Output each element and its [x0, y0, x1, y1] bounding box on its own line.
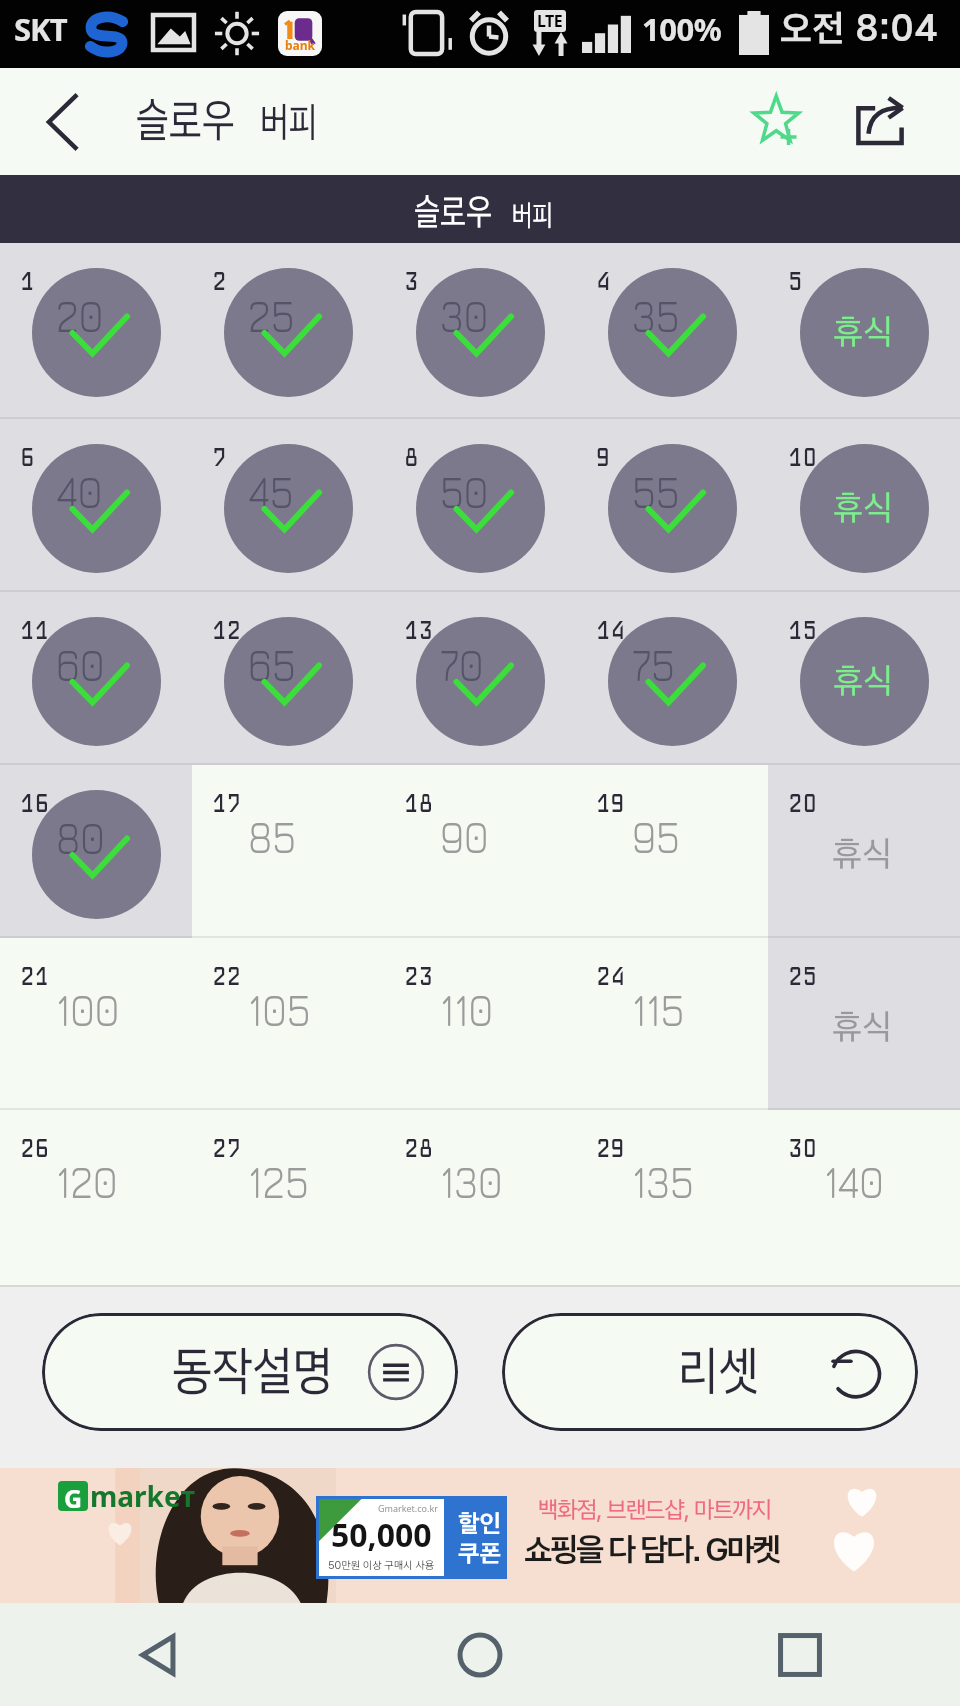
staticText: 75 — [632, 638, 676, 691]
staticText: 버피 — [512, 197, 554, 233]
button[interactable]: 14 — [576, 592, 768, 765]
staticText: 쿠폰 — [458, 1538, 501, 1568]
staticText: 50,000 — [331, 1513, 432, 1557]
staticText: markeт — [90, 1477, 195, 1515]
button[interactable]: 17 — [192, 765, 384, 938]
button[interactable]: 21 — [0, 938, 192, 1110]
button[interactable]: 1 — [0, 243, 192, 419]
button[interactable]: 9 — [576, 419, 768, 592]
staticText: 슬로우 — [136, 91, 235, 148]
staticText: 65 — [248, 638, 296, 691]
button[interactable]: 5 — [768, 243, 960, 419]
staticText: bank — [285, 37, 316, 53]
staticText: Gmarket.co.kr — [378, 1502, 438, 1514]
staticText: 95 — [632, 810, 680, 863]
staticText: 30 — [788, 1130, 818, 1165]
staticText: 27 — [212, 1130, 242, 1165]
staticText: 80 — [56, 811, 105, 864]
staticText: 29 — [596, 1130, 626, 1165]
staticText: 1 — [20, 263, 35, 298]
button[interactable]: 20 — [768, 765, 960, 938]
button[interactable]: 24 — [576, 938, 768, 1110]
button[interactable]: 16 — [0, 765, 192, 938]
button[interactable]: 10 — [768, 419, 960, 592]
button[interactable]: 25 — [768, 938, 960, 1110]
button[interactable]: 7 — [192, 419, 384, 592]
staticText: 18 — [404, 785, 434, 820]
button[interactable]: Gmarket.co.kr — [0, 1468, 960, 1603]
staticText: 26 — [20, 1130, 50, 1165]
staticText: 60 — [56, 638, 105, 691]
staticText: 휴식 — [832, 1006, 892, 1048]
button[interactable]: 23 — [384, 938, 576, 1110]
staticText: 125 — [248, 1155, 309, 1208]
staticText: 13 — [404, 612, 434, 647]
staticText: SKT — [14, 8, 67, 50]
button[interactable]: 18 — [384, 765, 576, 938]
button[interactable]: 6 — [0, 419, 192, 592]
staticText: 20 — [56, 289, 103, 342]
staticText: 휴식 — [833, 311, 893, 353]
staticText: 50만원 이상 구매시 사용 — [328, 1559, 435, 1572]
button[interactable]: 2 — [192, 243, 384, 419]
staticText: 슬로우 — [414, 189, 492, 234]
button[interactable]: 리셋 — [502, 1313, 918, 1431]
staticText: 90 — [440, 810, 489, 863]
staticText: 19 — [596, 785, 626, 820]
staticText: 오전 8:04 — [780, 6, 939, 50]
staticText: 6 — [20, 439, 35, 474]
button[interactable]: 8 — [384, 419, 576, 592]
staticText: 70 — [440, 638, 484, 691]
button[interactable]: Share — [800, 68, 960, 175]
staticText: 쇼핑을 다 담다. G마켓 — [524, 1530, 779, 1569]
staticText: 휴식 — [832, 833, 892, 875]
staticText: 23 — [404, 958, 434, 993]
staticText: 10 — [788, 439, 818, 474]
button[interactable]: 27 — [192, 1110, 384, 1285]
staticText: 4 — [596, 263, 611, 298]
staticText: 11 — [20, 612, 50, 647]
button[interactable]: 22 — [192, 938, 384, 1110]
button[interactable]: Back — [0, 68, 126, 175]
staticText: 21 — [20, 958, 50, 993]
button[interactable]: 19 — [576, 765, 768, 938]
staticText: 50 — [440, 465, 489, 518]
button[interactable]: 11 — [0, 592, 192, 765]
staticText: 45 — [248, 465, 294, 518]
staticText: 휴식 — [833, 660, 893, 702]
staticText: 15 — [788, 612, 818, 647]
button[interactable]: 13 — [384, 592, 576, 765]
staticText: 리셋 — [678, 1339, 759, 1403]
staticText: 17 — [212, 785, 242, 820]
button[interactable]: 29 — [576, 1110, 768, 1285]
button[interactable]: 30 — [768, 1110, 960, 1285]
button[interactable]: 4 — [576, 243, 768, 419]
staticText: 85 — [248, 810, 297, 863]
button[interactable]: Back — [0, 1603, 320, 1706]
staticText: 40 — [56, 465, 102, 518]
button[interactable]: Recent apps — [640, 1603, 960, 1706]
staticText: 25 — [248, 289, 295, 342]
staticText: 16 — [20, 785, 50, 820]
staticText: 7 — [212, 439, 227, 474]
staticText: 14 — [596, 612, 626, 647]
button[interactable]: 12 — [192, 592, 384, 765]
staticText: 120 — [56, 1155, 117, 1208]
staticText: 28 — [404, 1130, 434, 1165]
button[interactable]: 26 — [0, 1110, 192, 1285]
staticText: 100 — [56, 983, 119, 1036]
button[interactable]: 동작설명 — [42, 1313, 458, 1431]
staticText: 휴식 — [833, 487, 893, 529]
button[interactable]: Home — [320, 1603, 640, 1706]
button[interactable]: Add to favorites — [756, 68, 800, 175]
staticText: 5 — [788, 263, 803, 298]
staticText: 20 — [788, 785, 818, 820]
staticText: 동작설명 — [172, 1339, 333, 1403]
button[interactable]: 28 — [384, 1110, 576, 1285]
staticText: 30 — [440, 289, 489, 342]
button[interactable]: 15 — [768, 592, 960, 765]
staticText: 2 — [212, 263, 227, 298]
staticText: 버피 — [260, 97, 318, 147]
staticText: 25 — [788, 958, 818, 993]
button[interactable]: 3 — [384, 243, 576, 419]
